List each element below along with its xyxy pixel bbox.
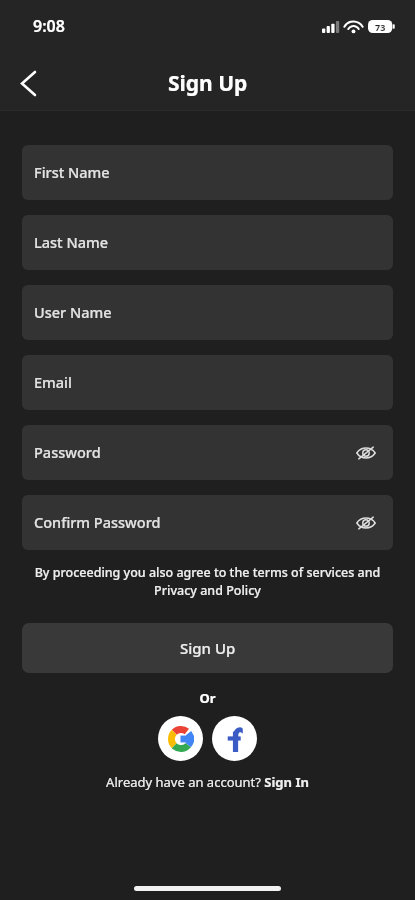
button[interactable]: Show password — [351, 438, 381, 468]
staticText: Or — [22, 689, 393, 707]
button[interactable]: First Name — [22, 145, 393, 200]
staticText: Password — [34, 442, 101, 462]
button[interactable]: Back — [6, 61, 50, 105]
staticText: Sign Up — [180, 638, 236, 658]
button[interactable]: Sign Up — [22, 623, 393, 673]
staticText: 73 — [375, 21, 386, 33]
button[interactable]: Last Name — [22, 215, 393, 270]
staticText: First Name — [34, 162, 110, 182]
button[interactable]: Show password — [351, 508, 381, 538]
staticText: Email — [34, 372, 72, 392]
button[interactable]: User Name — [22, 285, 393, 340]
button[interactable]: Sign up with Google — [158, 716, 203, 761]
button[interactable]: Sign up with Facebook — [212, 716, 257, 761]
staticText: Sign Up — [168, 69, 248, 98]
staticText: Last Name — [34, 232, 109, 252]
button[interactable]: Password — [22, 425, 393, 480]
button[interactable]: Confirm Password — [22, 495, 393, 550]
button[interactable]: Already have an account? Sign In — [22, 773, 393, 791]
staticText: Already have an account? Sign In — [106, 773, 309, 791]
staticText: Confirm Password — [34, 512, 161, 532]
staticText: User Name — [34, 302, 112, 322]
button[interactable]: Email — [22, 355, 393, 410]
staticText: 9:08 — [33, 15, 65, 37]
staticText: By proceeding you also agree to the term… — [28, 564, 387, 599]
